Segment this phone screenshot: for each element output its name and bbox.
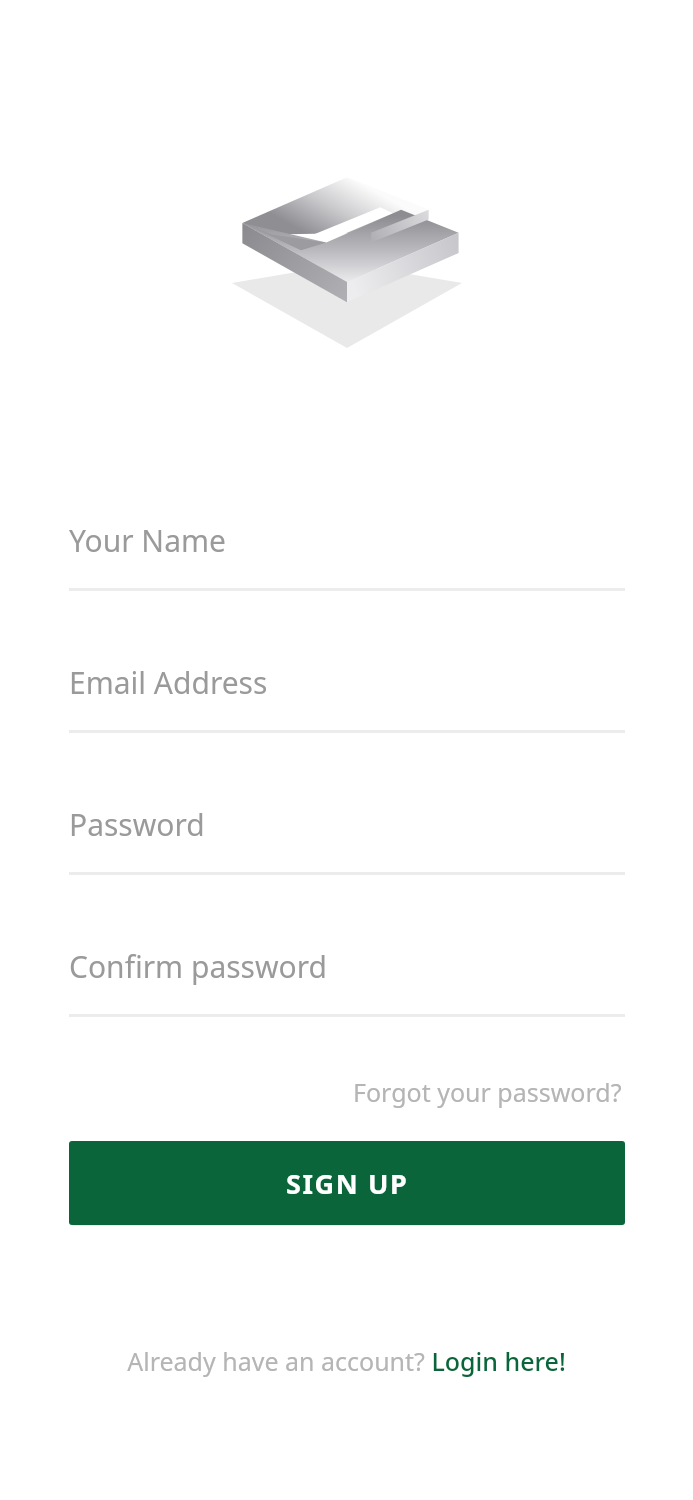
button[interactable]: Confirm password xyxy=(69,919,625,1061)
staticText: Email Address xyxy=(69,662,268,703)
button[interactable]: Already have an account? Login here! xyxy=(119,1338,574,1384)
button[interactable]: Password xyxy=(69,777,625,919)
button[interactable]: SIGN UP xyxy=(69,1141,625,1225)
staticText: Forgot your password? xyxy=(353,1075,622,1109)
staticText: SIGN UP xyxy=(286,1165,409,1202)
staticText: Your Name xyxy=(69,520,226,561)
button[interactable]: Forgot your password? xyxy=(351,1069,624,1115)
staticText: Already have an account? Login here! xyxy=(127,1344,566,1378)
staticText: Confirm password xyxy=(69,946,327,987)
button[interactable]: Your Name xyxy=(69,493,625,635)
staticText: Password xyxy=(69,804,205,845)
button[interactable]: Email Address xyxy=(69,635,625,777)
